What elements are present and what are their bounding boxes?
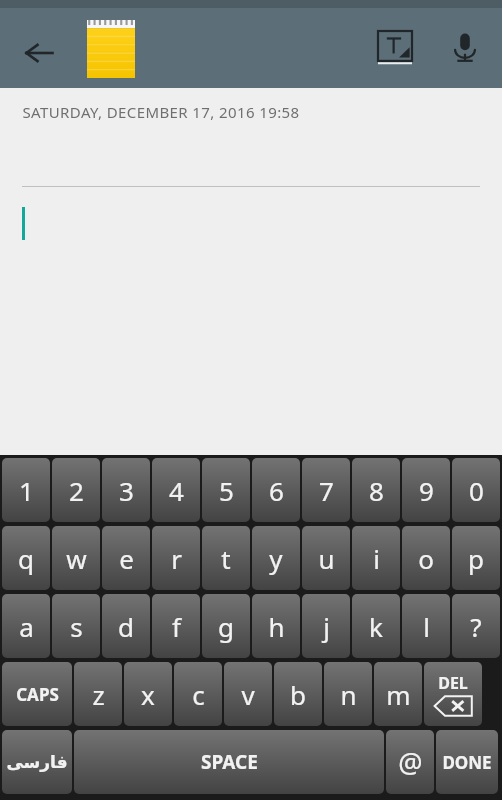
staticText: SPACE	[201, 749, 258, 775]
staticText: z	[92, 677, 105, 712]
button[interactable]: c	[174, 662, 222, 726]
button[interactable]: w	[52, 526, 100, 590]
button[interactable]: z	[74, 662, 122, 726]
button[interactable]: 2	[52, 458, 100, 522]
button[interactable]: 4	[152, 458, 200, 522]
staticText: ?	[470, 609, 482, 644]
staticText: k	[369, 609, 383, 644]
staticText: i	[373, 541, 380, 576]
staticText: 4	[169, 473, 184, 508]
button[interactable]: 3	[102, 458, 150, 522]
staticText: @	[398, 744, 423, 781]
staticText: r	[171, 541, 182, 576]
staticText: 7	[319, 473, 334, 508]
staticText: 1	[19, 473, 34, 508]
staticText: y	[269, 541, 283, 576]
button[interactable]: y	[252, 526, 300, 590]
button[interactable]: Back	[10, 24, 68, 82]
button[interactable]: l	[402, 594, 450, 658]
button[interactable]: DONE	[436, 730, 498, 794]
staticText: w	[66, 541, 87, 576]
button[interactable]: d	[102, 594, 150, 658]
staticText: q	[18, 541, 34, 576]
button[interactable]: 8	[352, 458, 400, 522]
staticText: n	[340, 677, 357, 712]
button[interactable]: 6	[252, 458, 300, 522]
staticText: l	[423, 609, 430, 644]
button[interactable]: Notepad	[83, 18, 139, 80]
staticText: DEL	[438, 672, 468, 694]
staticText: t	[221, 541, 231, 576]
staticText: u	[318, 541, 335, 576]
button[interactable]: g	[202, 594, 250, 658]
button[interactable]: b	[274, 662, 322, 726]
button[interactable]: u	[302, 526, 350, 590]
button[interactable]: 0	[452, 458, 500, 522]
staticText: 0	[469, 473, 484, 508]
staticText: c	[192, 677, 205, 712]
button[interactable]: Text format	[366, 19, 424, 77]
staticText: p	[468, 541, 484, 576]
staticText: SATURDAY, DECEMBER 17, 2016 19:58	[22, 102, 300, 122]
button[interactable]: Delete	[424, 662, 482, 726]
button[interactable]: 1	[2, 458, 50, 522]
button[interactable]: SPACE	[74, 730, 384, 794]
button[interactable]: j	[302, 594, 350, 658]
staticText: v	[241, 677, 255, 712]
button[interactable]: q	[2, 526, 50, 590]
button[interactable]: h	[252, 594, 300, 658]
button[interactable]: 7	[302, 458, 350, 522]
staticText: m	[386, 677, 411, 712]
button[interactable]: o	[402, 526, 450, 590]
staticText: 6	[269, 473, 284, 508]
button[interactable]: k	[352, 594, 400, 658]
button[interactable]: t	[202, 526, 250, 590]
staticText: 5	[219, 473, 234, 508]
staticText: h	[268, 609, 285, 644]
staticText: a	[19, 609, 34, 644]
staticText: j	[323, 609, 330, 644]
button[interactable]: v	[224, 662, 272, 726]
button[interactable]: f	[152, 594, 200, 658]
button[interactable]: e	[102, 526, 150, 590]
staticText: 9	[419, 473, 434, 508]
button[interactable]: CAPS	[2, 662, 72, 726]
button[interactable]: i	[352, 526, 400, 590]
button[interactable]: فارسی	[2, 730, 72, 794]
button[interactable]: p	[452, 526, 500, 590]
button[interactable]: Voice input	[436, 19, 494, 77]
button[interactable]: r	[152, 526, 200, 590]
button[interactable]: a	[2, 594, 50, 658]
staticText: x	[141, 677, 155, 712]
staticText: o	[418, 541, 434, 576]
staticText: DONE	[442, 751, 492, 774]
staticText: e	[119, 541, 134, 576]
staticText: f	[172, 609, 181, 644]
staticText: d	[118, 609, 134, 644]
button[interactable]: m	[374, 662, 422, 726]
staticText: g	[218, 609, 234, 644]
button[interactable]: @	[386, 730, 434, 794]
button[interactable]: ?	[452, 594, 500, 658]
staticText: CAPS	[16, 683, 59, 706]
button[interactable]: s	[52, 594, 100, 658]
staticText: 3	[119, 473, 134, 508]
staticText: b	[290, 677, 306, 712]
staticText: فارسی	[6, 752, 68, 772]
staticText: s	[70, 609, 83, 644]
staticText: 8	[369, 473, 384, 508]
button[interactable]: n	[324, 662, 372, 726]
button[interactable]: 9	[402, 458, 450, 522]
button[interactable]: 5	[202, 458, 250, 522]
staticText: 2	[69, 473, 84, 508]
button[interactable]: x	[124, 662, 172, 726]
